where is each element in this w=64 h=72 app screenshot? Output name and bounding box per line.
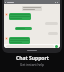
button[interactable] [9, 37, 30, 44]
button[interactable] [9, 13, 31, 20]
staticText: Chat Support [16, 55, 49, 62]
button[interactable] [48, 32, 58, 35]
button[interactable] [15, 27, 32, 30]
button[interactable]: Send [55, 45, 58, 48]
button[interactable]: Chat support preview [2, 0, 62, 53]
staticText: Get instant help [20, 63, 44, 67]
